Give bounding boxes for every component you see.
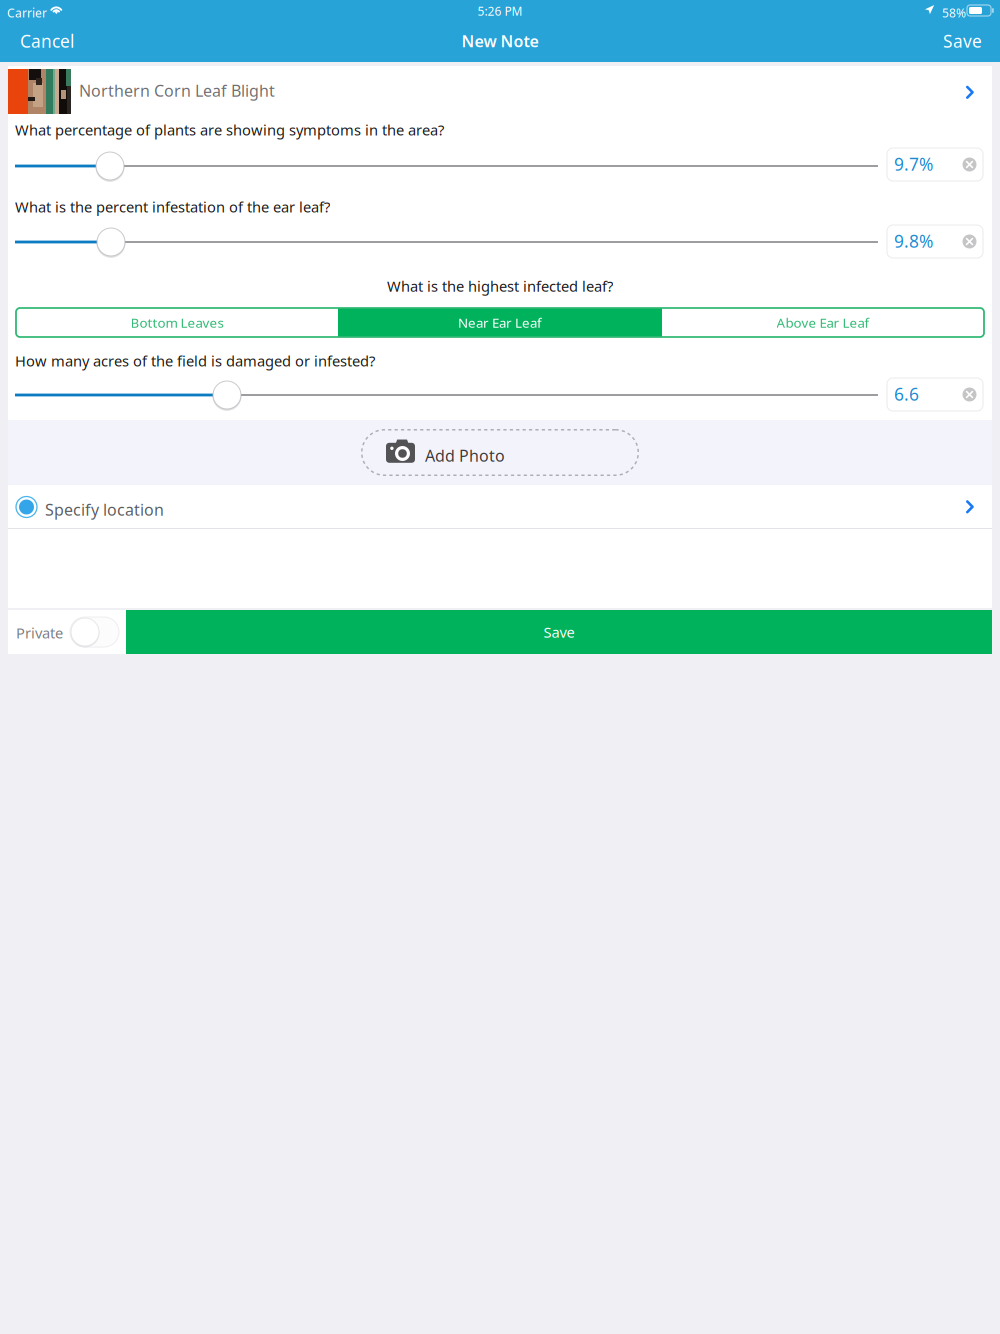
button[interactable]: Above Ear Leaf [662, 308, 984, 337]
button[interactable]: Cancel [0, 20, 92, 62]
button[interactable]: Add Photo [361, 429, 639, 476]
button[interactable]: Save [908, 20, 1000, 62]
button[interactable]: Crop photo [8, 69, 71, 114]
staticText: What percentage of plants are showing sy… [15, 120, 444, 139]
staticText: What is the highest infected leaf? [387, 276, 613, 296]
button[interactable]: Bottom Leaves [16, 308, 338, 337]
staticText: New Note [461, 30, 538, 52]
button[interactable]: Near Ear Leaf [338, 308, 662, 337]
staticText: Cancel [20, 29, 74, 52]
staticText: Specify location [45, 499, 164, 520]
staticText: Northern Corn Leaf Blight [79, 80, 275, 101]
staticText: 6.6 [894, 382, 919, 405]
staticText: 5:26 PM [477, 3, 522, 19]
staticText: Above Ear Leaf [776, 314, 869, 331]
button[interactable]: Specify location [8, 485, 992, 528]
staticText: Save [943, 29, 982, 52]
staticText: 58% [942, 5, 966, 21]
button[interactable]: Northern Corn Leaf Blight [8, 66, 992, 116]
staticText: 9.7% [894, 152, 933, 175]
button[interactable]: Save [126, 610, 992, 654]
staticText: Private [16, 623, 63, 642]
staticText: Bottom Leaves [130, 314, 223, 331]
staticText: What is the percent infestation of the e… [15, 197, 330, 216]
staticText: Carrier [7, 5, 47, 21]
staticText: How many acres of the field is damaged o… [15, 351, 375, 370]
staticText: 9.8% [894, 229, 933, 252]
staticText: Near Ear Leaf [458, 314, 542, 331]
staticText: Save [543, 622, 574, 642]
button[interactable]: Private [70, 617, 119, 647]
staticText: Add Photo [425, 445, 505, 466]
